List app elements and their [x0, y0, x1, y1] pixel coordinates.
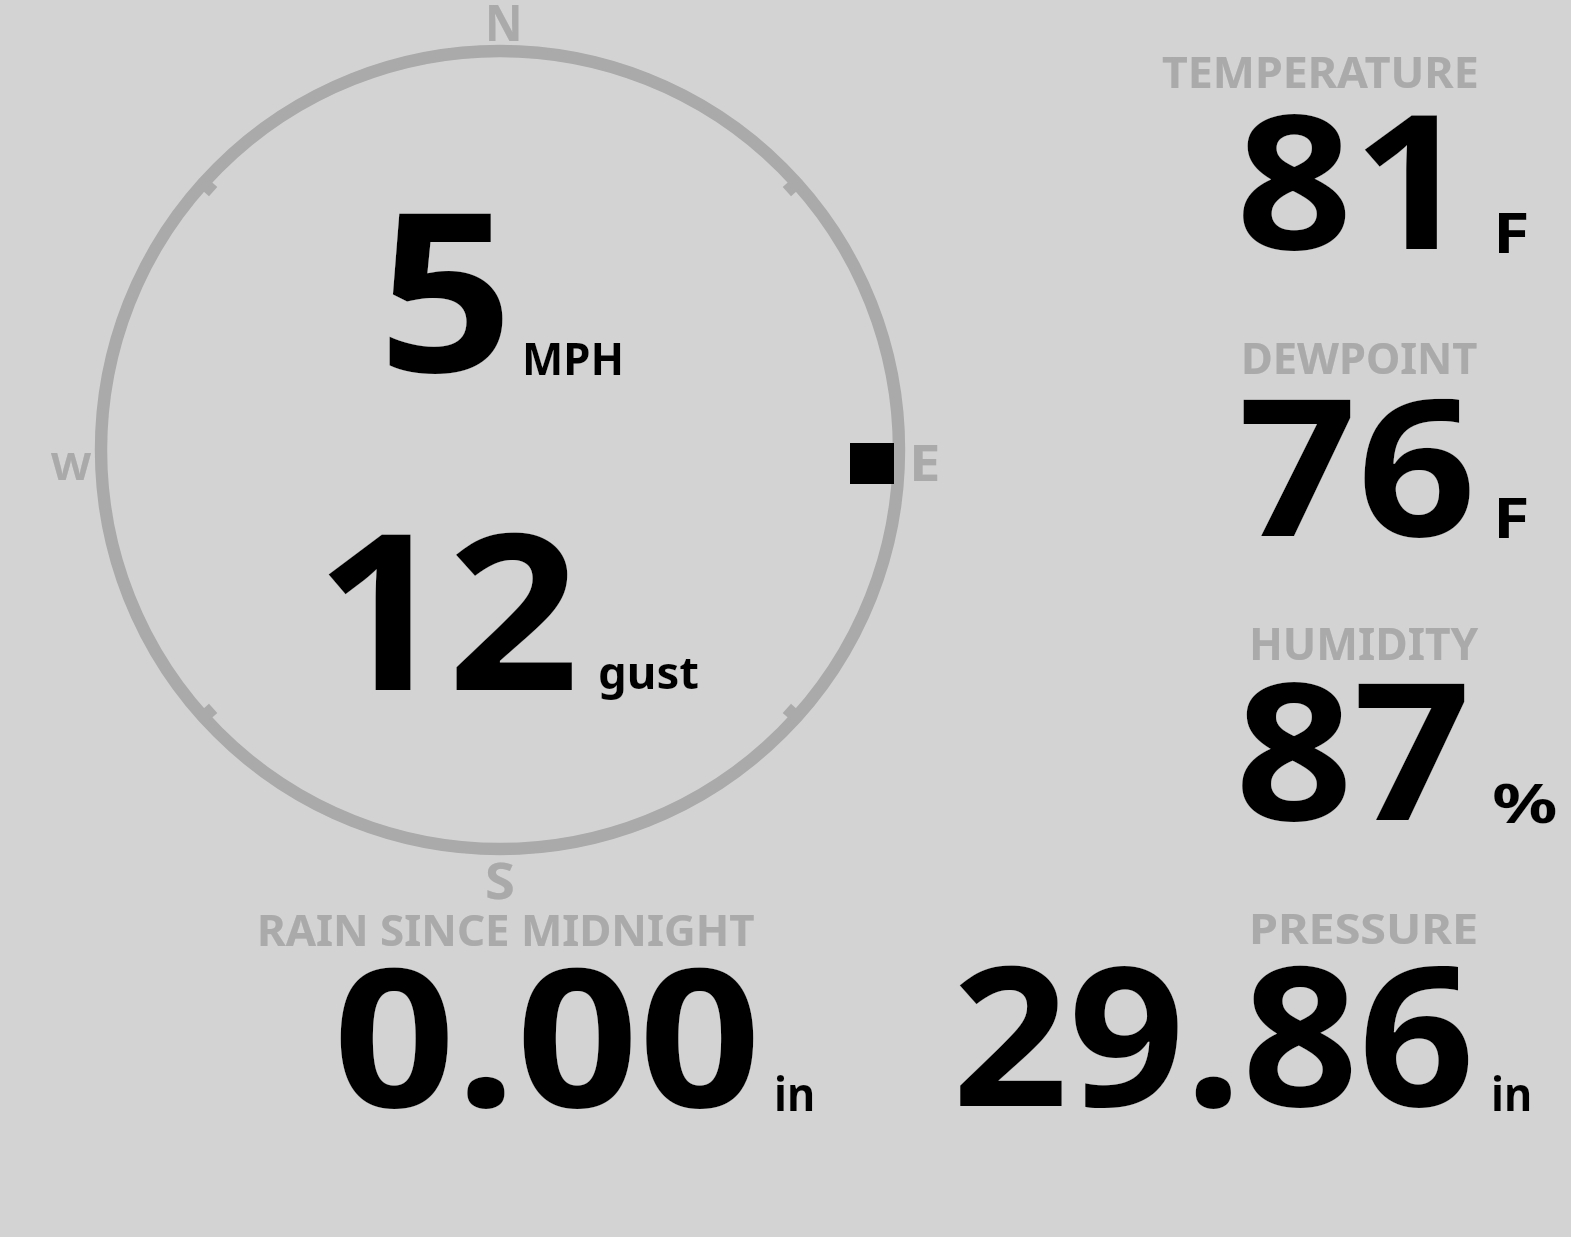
staticText: 0.00 [333, 901, 762, 1163]
staticText: S [485, 845, 515, 913]
staticText: TEMPERATURE [1162, 42, 1479, 101]
staticText: N [485, 0, 523, 55]
button[interactable]: Humidity 87 percent [1150, 610, 1570, 840]
staticText: % [1492, 765, 1558, 839]
staticText: 87 [1235, 616, 1471, 876]
staticText: W [51, 439, 91, 491]
button[interactable]: Wind 5 miles per hour, gusting 12, from … [80, 40, 920, 870]
staticText: E [909, 427, 941, 495]
button[interactable]: Temperature 81 degrees Fahrenheit [1150, 40, 1570, 270]
staticText: MPH [522, 327, 625, 388]
staticText: gust [598, 641, 700, 702]
staticText: HUMIDITY [1249, 612, 1479, 673]
button[interactable]: Rain since midnight 0.00 inches [250, 900, 830, 1130]
staticText: 5 [378, 136, 514, 437]
staticText: 81 [1236, 49, 1469, 304]
staticText: in [1491, 1062, 1532, 1125]
staticText: DEWPOINT [1241, 328, 1478, 387]
staticText: 29.86 [952, 899, 1475, 1163]
staticText: F [1493, 479, 1530, 555]
staticText: in [774, 1062, 815, 1125]
button[interactable]: Dewpoint 76 degrees Fahrenheit [1150, 325, 1570, 555]
staticText: 12 [315, 457, 580, 754]
staticText: 76 [1238, 332, 1477, 592]
button[interactable]: Pressure 29.86 inches [940, 900, 1540, 1130]
staticText: F [1493, 194, 1530, 270]
staticText: RAIN SINCE MIDNIGHT [257, 900, 755, 959]
staticText: PRESSURE [1249, 899, 1479, 956]
